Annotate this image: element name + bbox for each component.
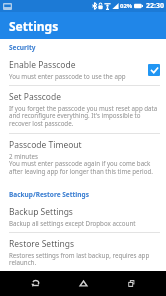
staticText: Set Passcode: [9, 91, 62, 103]
button[interactable]: Backup Settings: [0, 201, 166, 232]
button[interactable]: Back: [22, 271, 48, 296]
button[interactable]: Enable Passcode toggle: [148, 64, 160, 76]
staticText: Settings: [9, 18, 59, 34]
button[interactable]: Restore Settings: [0, 233, 166, 271]
staticText: Backup all settings except Dropbox accou…: [9, 219, 136, 227]
button[interactable]: Set Passcode: [0, 86, 166, 133]
staticText: Backup/Restore Settings: [9, 190, 89, 199]
button[interactable]: Passcode Timeout: [0, 134, 166, 181]
staticText: Restores settings from last backup, requ…: [9, 251, 160, 266]
staticText: 02%: [120, 2, 133, 10]
staticText: Passcode Timeout: [9, 139, 82, 151]
staticText: Backup Settings: [9, 206, 73, 218]
button[interactable]: Enable Passcode: [0, 54, 166, 85]
staticText: Enable Passcode: [9, 59, 76, 71]
staticText: Security: [9, 43, 36, 52]
staticText: Restore Settings: [9, 238, 75, 250]
staticText: If you forget the passcode you must rese…: [9, 104, 160, 128]
button[interactable]: Home: [70, 271, 96, 296]
staticText: 2 minutes You must enter passcode again …: [9, 152, 160, 176]
button[interactable]: Recent apps: [118, 271, 144, 296]
staticText: 22:30: [146, 1, 164, 11]
staticText: You must enter passcode to use the app: [9, 72, 126, 80]
